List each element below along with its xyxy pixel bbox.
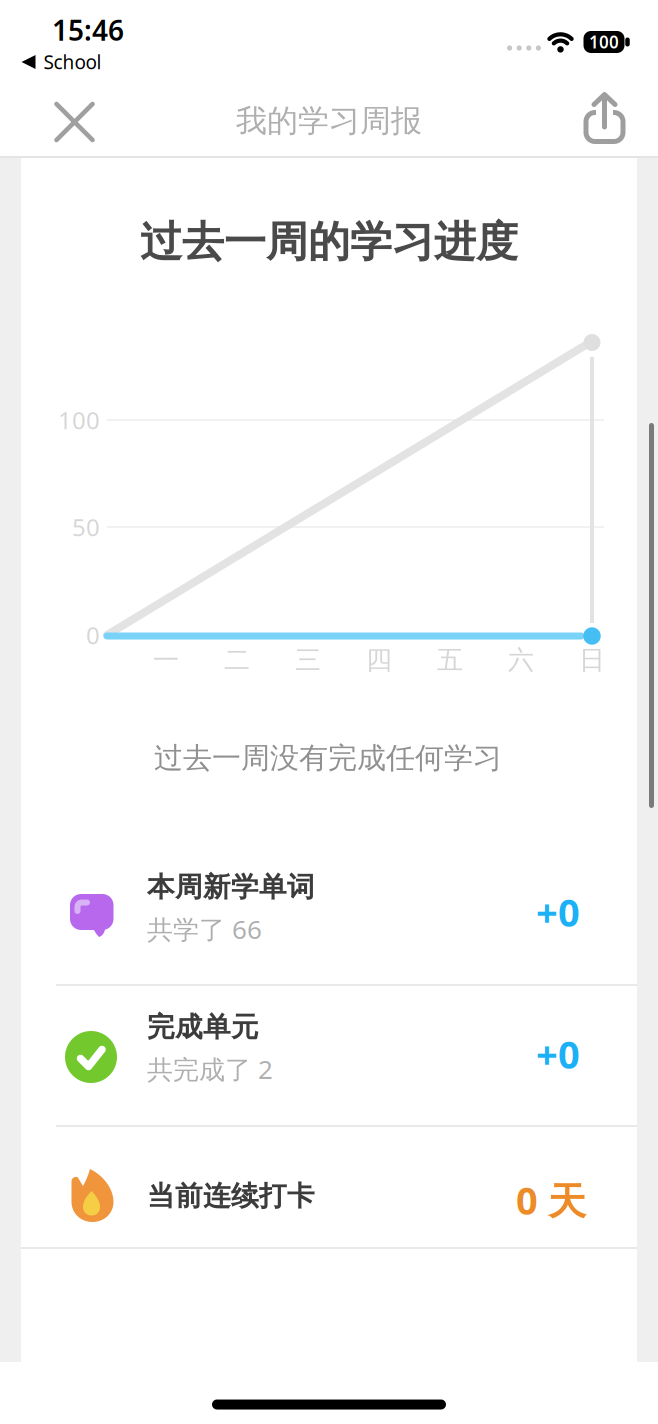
staticText: 过去一周没有完成任何学习 [154,740,502,776]
staticText: School [43,49,101,75]
staticText: 一 [153,644,179,676]
staticText: 0 天 [516,1174,586,1226]
staticText: 过去一周的学习进度 [140,215,518,268]
staticText: 本周新学单词 [147,870,315,904]
staticText: 100 [589,30,619,54]
button[interactable]: Share [581,91,627,147]
staticText: +0 [536,886,580,938]
staticText: 共学了 66 [147,911,262,947]
button[interactable]: Back to School [20,49,101,75]
staticText: 日 [579,644,605,676]
staticText: 100 [58,404,100,436]
staticText: 完成单元 [147,1010,259,1044]
staticText: 当前连续打卡 [147,1179,315,1213]
staticText: 50 [72,511,100,543]
staticText: 我的学习周报 [236,101,422,141]
staticText: 0 [86,619,100,651]
staticText: +0 [536,1028,580,1080]
button[interactable]: Close [52,100,96,144]
staticText: 六 [508,644,534,676]
staticText: 五 [437,644,463,676]
staticText: 三 [295,644,321,676]
staticText: 二 [224,644,250,676]
staticText: 四 [366,644,392,676]
staticText: 共完成了 2 [147,1051,273,1087]
staticText: 15:46 [52,11,124,49]
